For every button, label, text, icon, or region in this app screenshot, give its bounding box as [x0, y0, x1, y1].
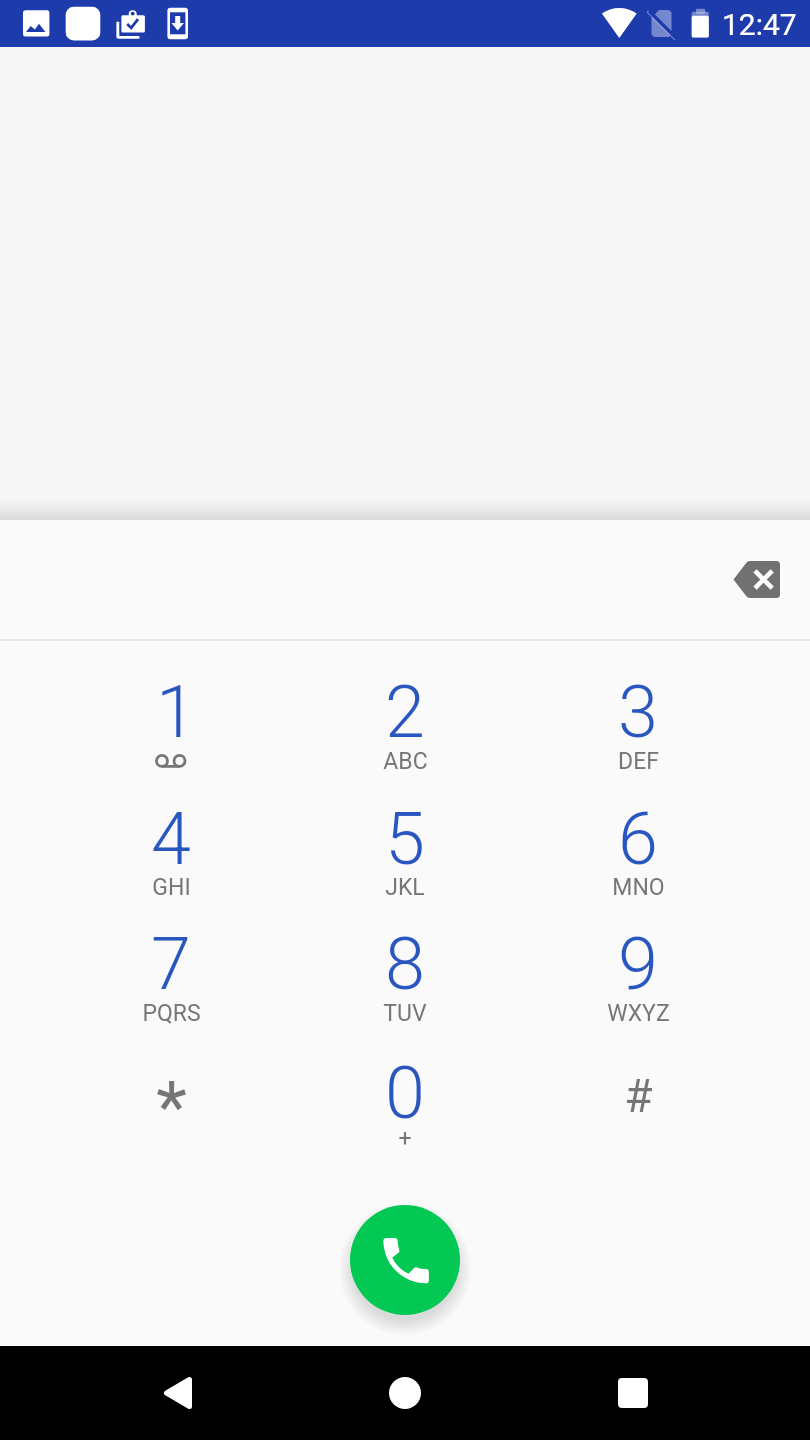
button[interactable]: 9: [522, 912, 754, 1036]
staticText: 12:47: [722, 7, 797, 42]
staticText: 8: [385, 922, 425, 1006]
staticText: #: [624, 1069, 653, 1123]
staticText: MNO: [612, 874, 665, 901]
button[interactable]: Back: [118, 1346, 238, 1440]
button[interactable]: Recent apps: [573, 1346, 693, 1440]
staticText: 4: [151, 797, 191, 881]
staticText: JKL: [385, 874, 425, 901]
button[interactable]: 3: [522, 660, 754, 784]
button[interactable]: 5: [289, 787, 521, 911]
button[interactable]: Home: [345, 1346, 465, 1440]
staticText: 6: [618, 797, 658, 881]
button[interactable]: 2: [289, 660, 521, 784]
staticText: 0: [385, 1051, 425, 1135]
button[interactable]: 0: [289, 1041, 521, 1165]
button[interactable]: Backspace: [716, 539, 796, 619]
staticText: 1: [156, 670, 196, 754]
staticText: *: [156, 1065, 187, 1148]
button[interactable]: 6: [522, 787, 754, 911]
button[interactable]: Call: [350, 1205, 460, 1315]
button[interactable]: 8: [289, 912, 521, 1036]
staticText: 5: [385, 797, 425, 881]
staticText: 7: [151, 922, 191, 1006]
staticText: 2: [385, 670, 425, 754]
button[interactable]: 7: [55, 912, 287, 1036]
staticText: 9: [618, 922, 658, 1006]
button[interactable]: 4: [55, 787, 287, 911]
button[interactable]: 1: [55, 660, 287, 784]
staticText: ABC: [383, 748, 428, 775]
staticText: PQRS: [142, 1000, 201, 1027]
button[interactable]: #: [522, 1041, 754, 1165]
staticText: DEF: [618, 748, 659, 775]
button[interactable]: *: [55, 1041, 287, 1165]
staticText: +: [398, 1125, 412, 1152]
staticText: WXYZ: [607, 1000, 670, 1027]
staticText: 3: [618, 670, 658, 754]
staticText: GHI: [152, 874, 191, 901]
staticText: TUV: [383, 1000, 427, 1027]
